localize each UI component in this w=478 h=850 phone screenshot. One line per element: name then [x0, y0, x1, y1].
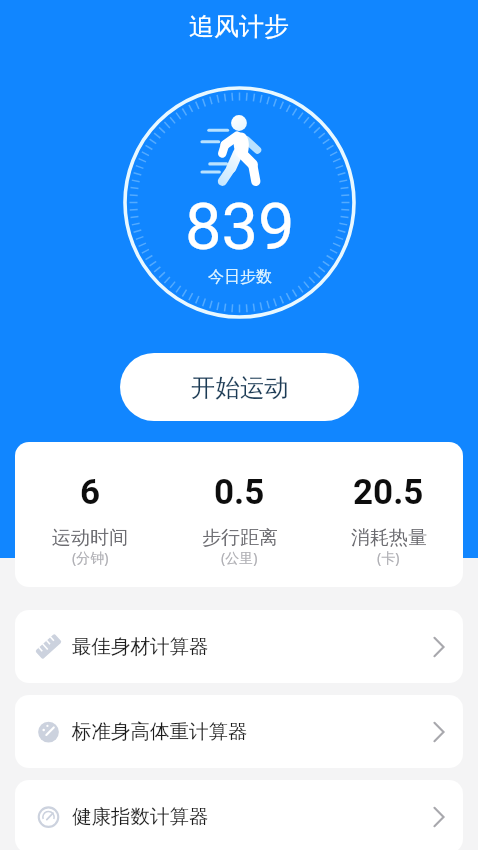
staticText: 6 [80, 472, 101, 513]
staticText: 最佳身材计算器 [72, 634, 209, 659]
button[interactable]: 最佳身材计算器 [15, 610, 463, 683]
staticText: 0.5 [214, 472, 265, 513]
staticText: (卡) [377, 548, 400, 567]
button[interactable]: 标准身高体重计算器 [15, 695, 463, 768]
button[interactable]: 健康指数计算器 [15, 780, 463, 850]
staticText: (分钟) [72, 548, 109, 567]
staticText: 今日步数 [208, 267, 272, 287]
staticText: 20.5 [353, 472, 424, 513]
staticText: 839 [185, 189, 295, 265]
staticText: 健康指数计算器 [72, 804, 209, 829]
staticText: 步行距离 [202, 526, 278, 550]
staticText: 开始运动 [191, 372, 289, 403]
button[interactable]: 开始运动 [120, 353, 359, 421]
staticText: 消耗热量 [351, 526, 427, 550]
staticText: 追风计步 [189, 11, 289, 42]
staticText: 标准身高体重计算器 [72, 719, 248, 744]
staticText: (公里) [221, 548, 258, 567]
staticText: 运动时间 [52, 526, 128, 550]
